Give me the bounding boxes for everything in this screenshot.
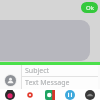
button[interactable]: Music — [60, 89, 80, 100]
button[interactable]: More — [80, 89, 100, 100]
staticText: Ok — [86, 4, 94, 12]
button[interactable]: Text Message — [21, 77, 98, 89]
button[interactable]: Store — [40, 89, 60, 100]
button[interactable]: Subject — [21, 65, 98, 77]
staticText: Text Message — [25, 78, 70, 88]
staticText: Subject — [25, 66, 50, 76]
button[interactable]: Ok — [81, 2, 98, 13]
button[interactable]: Camera — [0, 89, 20, 100]
button[interactable]: Photos — [20, 89, 40, 100]
button[interactable]: Contact avatar — [4, 74, 17, 87]
